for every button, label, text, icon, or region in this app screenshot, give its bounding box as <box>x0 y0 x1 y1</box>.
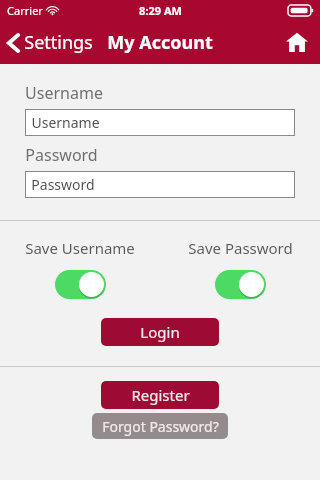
staticText: Save Password <box>188 238 293 258</box>
staticText: Register <box>131 385 190 405</box>
button[interactable]: Password <box>25 171 295 198</box>
staticText: Login <box>140 322 180 342</box>
button[interactable]: Home <box>274 22 320 62</box>
button[interactable]: Save Username <box>0 238 160 299</box>
other: Toggle <box>215 270 266 299</box>
staticText: 8:29 AM <box>139 3 182 18</box>
staticText: My Account <box>107 30 213 55</box>
staticText: Password <box>25 144 98 166</box>
button[interactable]: Username <box>25 109 295 136</box>
button[interactable]: Settings <box>0 24 101 61</box>
staticText: Forgot Password? <box>102 417 219 436</box>
staticText: Save Username <box>25 238 135 258</box>
staticText: Carrier <box>7 3 43 18</box>
button[interactable]: Register <box>101 381 219 409</box>
staticText: Settings <box>24 30 93 55</box>
staticText: Username <box>31 113 100 132</box>
button[interactable]: Save Password <box>160 238 320 299</box>
staticText: Username <box>25 82 103 104</box>
other: Toggle <box>55 270 106 299</box>
staticText: Password <box>31 175 95 194</box>
button[interactable]: Login <box>101 318 219 346</box>
button[interactable]: Forgot Password? <box>92 413 228 439</box>
